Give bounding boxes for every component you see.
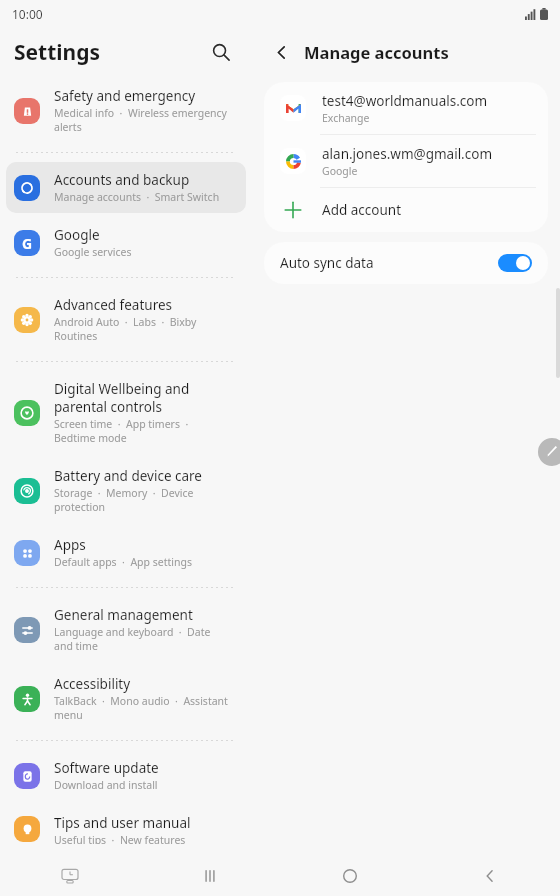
staticText: Safety and emergency: [54, 87, 225, 105]
button[interactable]: Recents: [140, 855, 280, 896]
button[interactable]: alan.jones.wm@gmail.com: [264, 135, 548, 187]
button[interactable]: Recent apps panel: [0, 855, 140, 896]
button[interactable]: Add account: [264, 188, 548, 232]
staticText: Storage · Memory · Device protection: [54, 486, 229, 514]
staticText: Download and install: [54, 778, 229, 792]
staticText: test4@worldmanuals.com: [322, 92, 488, 110]
staticText: Battery and device care: [54, 467, 225, 485]
button[interactable]: Home: [280, 855, 420, 896]
button[interactable]: Tips and user manual: [6, 805, 246, 853]
staticText: Apps: [54, 536, 225, 554]
staticText: 10:00: [12, 6, 43, 22]
button[interactable]: Auto sync data: [264, 242, 548, 284]
staticText: Exchange: [322, 111, 370, 125]
button[interactable]: General management: [6, 597, 246, 662]
staticText: Android Auto · Labs · Bixby Routines: [54, 315, 229, 343]
button[interactable]: G: [6, 217, 246, 268]
button[interactable]: Edge panel: [538, 438, 560, 466]
staticText: Advanced features: [54, 296, 225, 314]
staticText: Manage accounts: [304, 41, 449, 63]
staticText: Accounts and backup: [54, 171, 225, 189]
staticText: Digital Wellbeing and parental controls: [54, 380, 225, 416]
staticText: Settings: [14, 38, 101, 67]
staticText: Medical info · Wireless emergency alerts: [54, 106, 229, 134]
button[interactable]: Software update: [6, 750, 246, 801]
staticText: General management: [54, 606, 225, 624]
staticText: Language and keyboard · Date and time: [54, 625, 229, 653]
button[interactable]: Back: [420, 855, 560, 896]
staticText: Google services: [54, 245, 229, 259]
staticText: Add account: [322, 201, 402, 219]
button[interactable]: Accounts and backup: [6, 162, 246, 213]
staticText: Google: [54, 226, 225, 244]
button[interactable]: Apps: [6, 527, 246, 578]
staticText: Default apps · App settings: [54, 555, 229, 569]
staticText: Manage accounts · Smart Switch: [54, 190, 229, 204]
staticText: Tips and user manual: [54, 814, 225, 832]
button[interactable]: Advanced features: [6, 287, 246, 352]
staticText: G: [22, 234, 33, 253]
button[interactable]: Safety and emergency: [6, 78, 246, 143]
staticText: Auto sync data: [280, 254, 498, 272]
staticText: alan.jones.wm@gmail.com: [322, 145, 493, 163]
button[interactable]: Search: [204, 35, 238, 69]
button[interactable]: Digital Wellbeing and parental controls: [6, 371, 246, 454]
button[interactable]: Back: [266, 37, 296, 67]
staticText: Google: [322, 164, 358, 178]
button[interactable]: Accessibility: [6, 666, 246, 731]
staticText: Screen time · App timers · Bedtime mode: [54, 417, 229, 445]
staticText: Software update: [54, 759, 225, 777]
button[interactable]: test4@worldmanuals.com: [264, 82, 548, 134]
button[interactable]: Battery and device care: [6, 458, 246, 523]
staticText: Accessibility: [54, 675, 225, 693]
staticText: TalkBack · Mono audio · Assistant menu: [54, 694, 229, 722]
staticText: Useful tips · New features: [54, 833, 229, 844]
